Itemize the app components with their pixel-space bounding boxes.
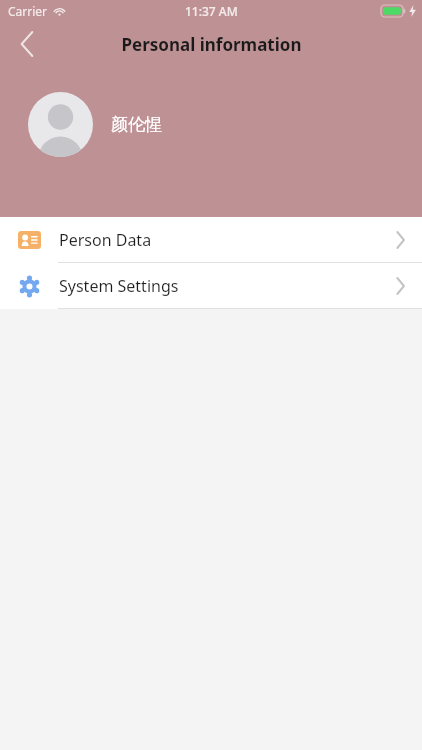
button[interactable]: Profile photo bbox=[28, 92, 93, 157]
staticText: System Settings bbox=[59, 275, 179, 297]
button[interactable]: System Settings bbox=[0, 263, 422, 308]
staticText: 颜伦惺 bbox=[111, 114, 162, 135]
staticText: Personal information bbox=[121, 33, 302, 56]
button[interactable]: Back bbox=[0, 22, 54, 66]
staticText: 11:37 AM bbox=[185, 3, 238, 19]
staticText: Carrier bbox=[8, 3, 48, 19]
staticText: Person Data bbox=[59, 229, 152, 251]
button[interactable]: Person Data bbox=[0, 217, 422, 262]
